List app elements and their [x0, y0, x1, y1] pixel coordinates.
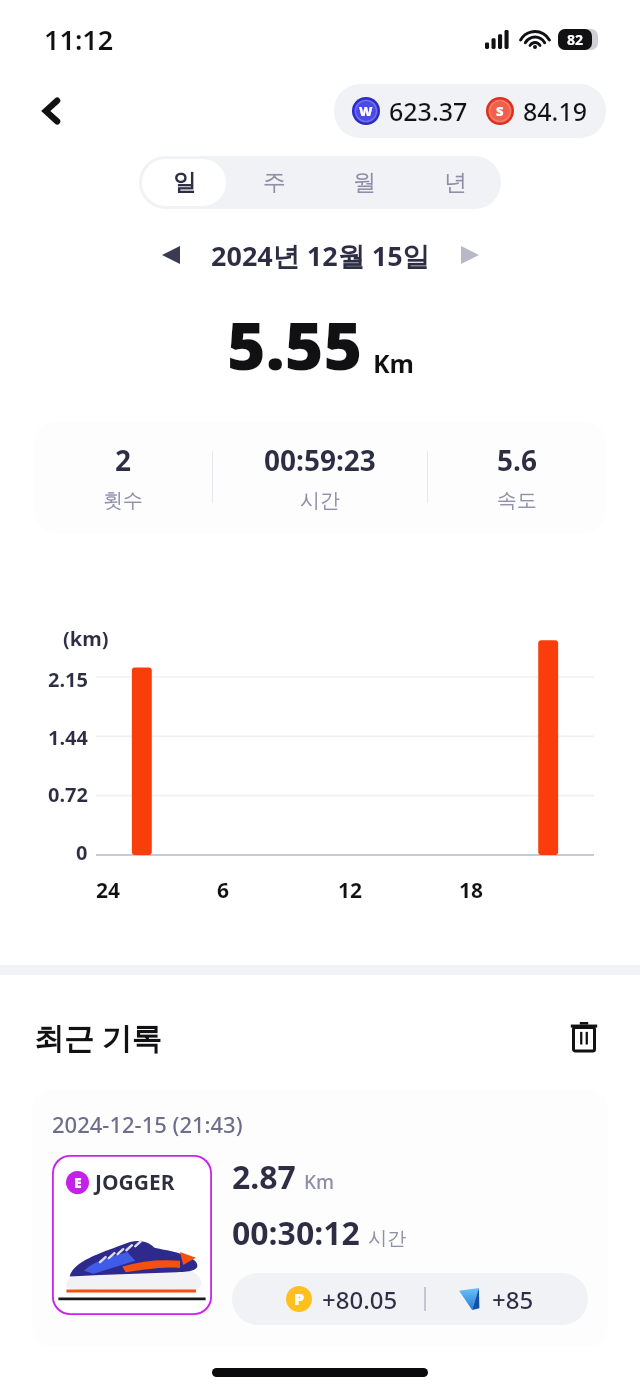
button[interactable]: 2 — [34, 421, 606, 533]
staticText: Km — [373, 346, 414, 380]
staticText: 2 — [115, 441, 132, 479]
button[interactable]: 월 — [322, 159, 407, 206]
staticText: JOGGER — [95, 1168, 175, 1197]
staticText: 2.15 — [48, 666, 88, 693]
staticText: 2024년 12월 15일 — [211, 237, 430, 274]
staticText: 일 — [173, 168, 196, 197]
staticText: 84.19 — [523, 94, 588, 128]
staticText: S — [496, 102, 504, 120]
staticText: 횟수 — [103, 488, 143, 513]
staticText: W — [359, 102, 373, 120]
staticText: 82 — [567, 30, 584, 49]
staticText: 시간 — [300, 488, 340, 513]
staticText: 2.87 — [232, 1155, 296, 1199]
button[interactable]: 년 — [413, 159, 498, 206]
staticText: 11:12 — [44, 21, 114, 58]
button[interactable]: P — [232, 1273, 588, 1325]
staticText: 623.37 — [389, 94, 468, 128]
staticText: P — [294, 1288, 305, 1310]
button[interactable]: Delete records — [558, 1011, 610, 1063]
button[interactable]: Previous day — [149, 233, 193, 277]
staticText: 12 — [338, 876, 459, 905]
staticText: 5.55 — [227, 299, 363, 389]
staticText: 2024-12-15 (21:43) — [52, 1109, 243, 1139]
staticText: 년 — [444, 168, 467, 197]
button[interactable]: 주 — [232, 159, 316, 206]
staticText: (km) — [63, 625, 109, 652]
staticText: 18 — [459, 876, 580, 905]
staticText: 최근 기록 — [34, 1017, 162, 1058]
staticText: 00:30:12 — [232, 1211, 360, 1255]
staticText: 0.72 — [48, 781, 88, 808]
staticText: Km — [304, 1169, 335, 1195]
button[interactable]: Next day — [448, 233, 492, 277]
button[interactable]: W — [334, 84, 606, 138]
staticText: 0 — [76, 839, 88, 866]
staticText: 5.6 — [497, 441, 537, 479]
staticText: 24 — [96, 876, 217, 905]
staticText: 주 — [263, 168, 286, 197]
button[interactable]: 2024-12-15 (21:43) — [32, 1089, 608, 1347]
staticText: 1.44 — [48, 724, 88, 751]
staticText: 시간 — [368, 1227, 406, 1251]
button[interactable]: 일 — [142, 159, 226, 206]
staticText: 속도 — [497, 488, 537, 513]
staticText: +80.05 — [322, 1283, 398, 1316]
staticText: 월 — [353, 168, 376, 197]
staticText: 6 — [217, 876, 338, 905]
staticText: +85 — [492, 1283, 534, 1316]
button[interactable]: Back — [28, 87, 76, 135]
staticText: E — [74, 1173, 82, 1192]
staticText: 00:59:23 — [264, 441, 376, 479]
